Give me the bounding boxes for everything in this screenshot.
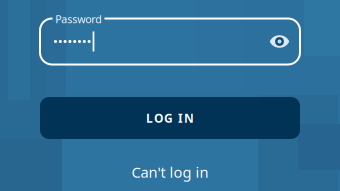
staticText: Password bbox=[55, 12, 102, 26]
staticText: Can't log in bbox=[131, 162, 208, 182]
button[interactable]: Can't log in bbox=[0, 161, 340, 183]
staticText: L O G I N bbox=[146, 110, 194, 126]
button[interactable]: L O G I N bbox=[40, 97, 300, 139]
button[interactable]: Show password bbox=[262, 18, 296, 64]
